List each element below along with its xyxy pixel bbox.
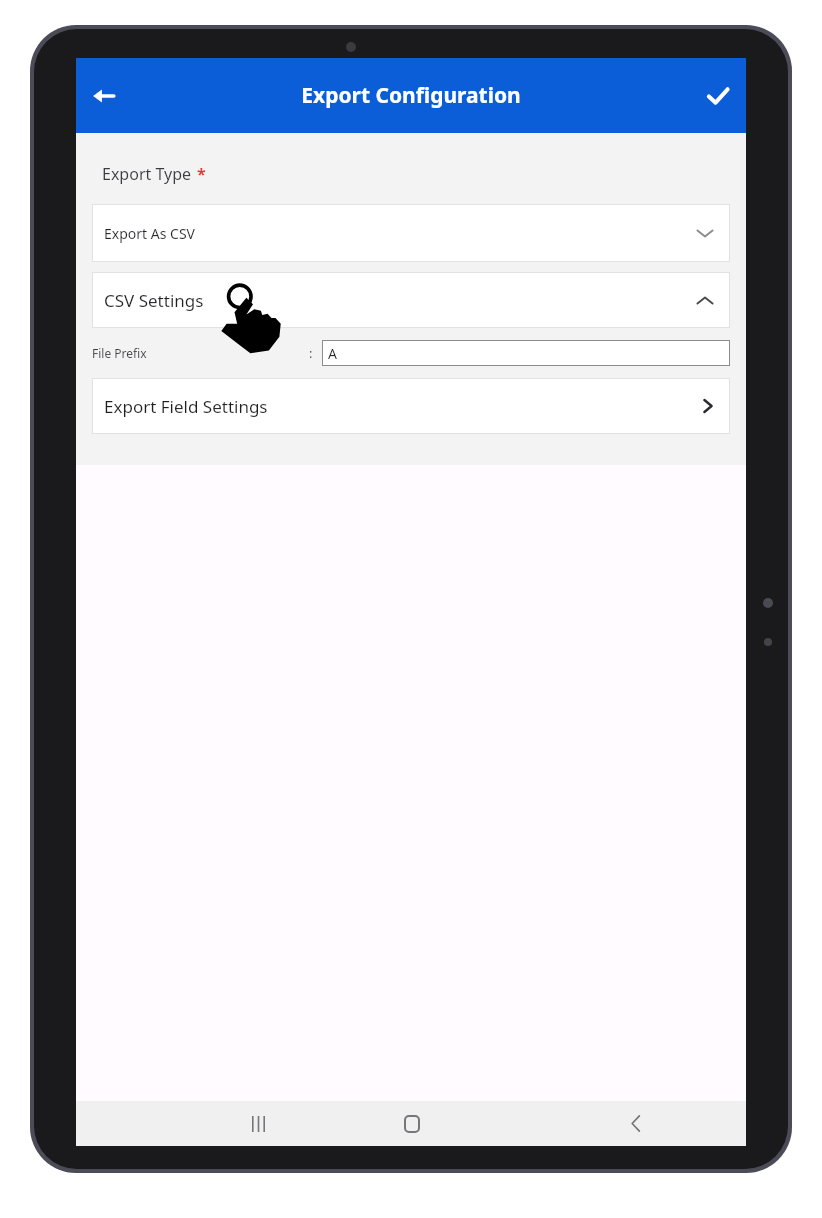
button[interactable]: Home [388, 1101, 436, 1146]
staticText: Export Field Settings [104, 395, 268, 418]
button[interactable]: Back [612, 1101, 660, 1146]
staticText: * [197, 163, 206, 185]
button[interactable]: Back [76, 68, 132, 124]
staticText: File Prefix [92, 345, 147, 361]
staticText: Export As CSV [104, 224, 195, 243]
staticText: Export Configuration [301, 81, 521, 110]
staticText: CSV Settings [104, 289, 204, 312]
button[interactable]: Export As CSV [92, 204, 730, 262]
staticText: : [309, 344, 313, 362]
staticText: A [328, 344, 337, 363]
button[interactable]: A [322, 340, 730, 366]
staticText: Export Type [102, 163, 192, 185]
button[interactable]: CSV Settings [92, 272, 730, 328]
button[interactable]: Export Field Settings [92, 378, 730, 434]
button[interactable]: Save [690, 68, 746, 124]
button[interactable]: Recent apps [234, 1101, 282, 1146]
